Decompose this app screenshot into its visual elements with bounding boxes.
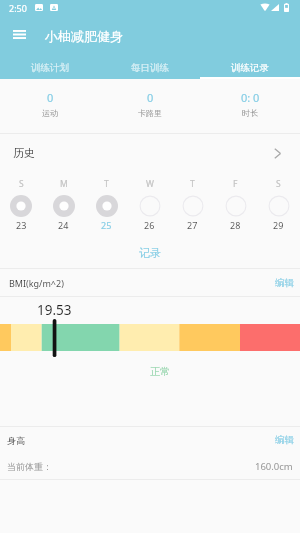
staticText: M (60, 178, 68, 190)
staticText: T (190, 178, 195, 190)
button[interactable]: F (214, 178, 257, 233)
button[interactable]: Open navigation menu (6, 21, 33, 48)
staticText: 2:50 (9, 2, 27, 14)
button[interactable]: 训练记录 (200, 57, 300, 79)
button[interactable]: 记录 (125, 244, 175, 262)
staticText: 训练计划 (31, 62, 69, 74)
button[interactable]: 编辑 (273, 432, 296, 448)
staticText: 0 (147, 90, 154, 105)
staticText: 28 (230, 219, 241, 231)
staticText: 29 (273, 219, 284, 231)
button[interactable]: 每日训练 (100, 57, 200, 79)
button[interactable]: 历史 (0, 134, 300, 172)
staticText: 卡路里 (138, 108, 162, 118)
staticText: 运动 (42, 108, 58, 118)
button[interactable]: W (128, 178, 171, 233)
staticText: 每日训练 (131, 62, 169, 74)
staticText: 当前体重： (7, 461, 52, 472)
staticText: 小柚减肥健身 (45, 28, 123, 44)
staticText: S (19, 178, 24, 190)
staticText: BMI(kg/m^2) (9, 277, 64, 289)
button[interactable]: 当前体重： (0, 453, 300, 479)
staticText: W (146, 178, 154, 190)
button[interactable]: 编辑 (273, 275, 296, 291)
staticText: 25 (101, 219, 112, 231)
staticText: 160.0cm (255, 460, 293, 473)
button[interactable]: M (42, 178, 85, 233)
button[interactable]: S (0, 178, 42, 233)
staticText: 27 (187, 219, 198, 231)
staticText: F (233, 178, 238, 190)
staticText: 0 (47, 90, 54, 105)
button[interactable]: T (171, 178, 214, 233)
staticText: 19.53 (37, 301, 72, 319)
staticText: 24 (58, 219, 69, 231)
staticText: 26 (144, 219, 155, 231)
staticText: S (276, 178, 281, 190)
staticText: 正常 (150, 365, 170, 378)
staticText: 身高 (7, 435, 25, 446)
staticText: 0: 0 (241, 90, 260, 105)
staticText: 训练记录 (231, 62, 269, 74)
button[interactable]: S (257, 178, 300, 233)
button[interactable]: T (85, 178, 128, 233)
staticText: 历史 (13, 146, 35, 160)
staticText: 时长 (242, 108, 258, 118)
staticText: 23 (16, 219, 27, 231)
button[interactable]: 训练计划 (0, 57, 100, 79)
staticText: T (104, 178, 109, 190)
button[interactable]: 身高 (0, 427, 300, 453)
